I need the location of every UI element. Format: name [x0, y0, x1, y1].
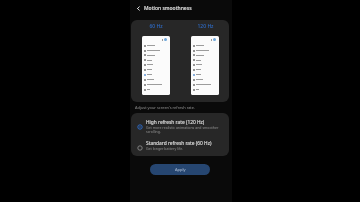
button[interactable]: Apply [150, 164, 210, 175]
staticText: 60 Hz [149, 23, 163, 30]
staticText: Get longer battery life. [146, 146, 184, 151]
staticText: Get more realistic animations and smooth… [146, 125, 219, 134]
staticText: High refresh rate (120 Hz) [146, 119, 205, 126]
staticText: 120 Hz [197, 23, 214, 30]
button[interactable]: High refresh rate (120 Hz) [131, 113, 229, 134]
staticText: Adjust your screen's refresh rate. [135, 105, 195, 110]
button[interactable]: Standard refresh rate (60 Hz) [131, 134, 229, 155]
button[interactable]: Back [134, 3, 143, 14]
staticText: Apply [175, 167, 186, 172]
staticText: Standard refresh rate (60 Hz) [146, 140, 212, 147]
staticText: Motion smoothness [144, 5, 192, 12]
